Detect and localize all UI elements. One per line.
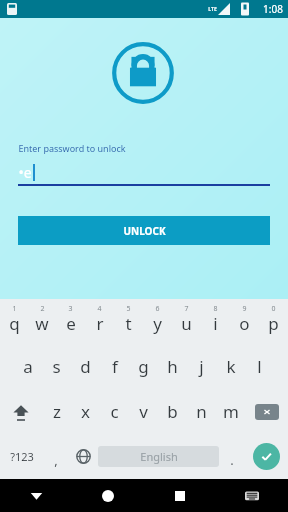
button[interactable]: z (42, 389, 71, 434)
button[interactable]: Backspace (245, 389, 288, 434)
staticText: n (196, 400, 207, 423)
button[interactable]: 7 (172, 299, 201, 344)
button[interactable]: , (43, 434, 69, 479)
button[interactable]: l (245, 344, 274, 389)
button[interactable]: Enter (245, 434, 288, 479)
other: Locked (112, 42, 174, 104)
staticText: 0 (271, 304, 276, 314)
button[interactable]: b (158, 389, 187, 434)
button[interactable]: 8 (201, 299, 230, 344)
button[interactable]: 2 (28, 299, 56, 344)
button[interactable]: c (100, 389, 129, 434)
staticText: w (35, 312, 49, 335)
button[interactable]: h (158, 344, 187, 389)
staticText: 1 (12, 304, 17, 314)
button[interactable]: Recent apps (144, 479, 216, 512)
button[interactable]: v (129, 389, 158, 434)
button[interactable]: Shift (0, 389, 42, 434)
staticText: 2 (40, 304, 45, 314)
staticText: LTE (208, 6, 217, 13)
staticText: UNLOCK (123, 224, 166, 238)
button[interactable]: 3 (56, 299, 85, 344)
staticText: o (239, 312, 250, 335)
staticText: •e (18, 163, 32, 182)
staticText: i (213, 312, 218, 335)
button[interactable]: f (100, 344, 129, 389)
staticText: 5 (126, 304, 131, 314)
staticText: 4 (97, 304, 102, 314)
staticText: . (230, 451, 234, 469)
staticText: j (199, 355, 204, 378)
button[interactable]: Change language (69, 434, 98, 479)
staticText: t (125, 312, 132, 335)
button[interactable]: g (129, 344, 158, 389)
staticText: 1:08 (263, 2, 283, 16)
button[interactable]: UNLOCK (18, 216, 270, 245)
button[interactable]: m (216, 389, 245, 434)
staticText: d (80, 355, 91, 378)
staticText: u (181, 312, 192, 335)
button[interactable]: j (187, 344, 216, 389)
button[interactable]: Back (0, 479, 72, 512)
staticText: y (153, 312, 162, 335)
staticText: c (110, 400, 119, 423)
button[interactable]: 6 (143, 299, 172, 344)
staticText: Enter password to unlock (18, 142, 126, 154)
staticText: 6 (155, 304, 160, 314)
staticText: b (167, 400, 178, 423)
button[interactable]: English (98, 446, 219, 467)
button[interactable]: . (219, 434, 245, 479)
staticText: k (226, 355, 236, 378)
staticText: e (66, 312, 76, 335)
button[interactable]: n (187, 389, 216, 434)
button[interactable]: s (42, 344, 71, 389)
staticText: l (257, 355, 262, 378)
button[interactable]: d (71, 344, 100, 389)
staticText: z (53, 400, 61, 423)
staticText: a (23, 355, 33, 378)
staticText: x (81, 400, 90, 423)
staticText: , (54, 451, 58, 469)
button[interactable]: 9 (230, 299, 259, 344)
button[interactable]: k (216, 344, 245, 389)
button[interactable]: 1 (0, 299, 28, 344)
staticText: h (167, 355, 178, 378)
button[interactable]: x (71, 389, 100, 434)
staticText: v (139, 400, 148, 423)
staticText: English (140, 449, 178, 464)
staticText: f (112, 355, 118, 378)
staticText: 7 (184, 304, 189, 314)
staticText: ?123 (10, 449, 34, 464)
button[interactable]: Home (72, 479, 144, 512)
button[interactable]: ?123 (0, 434, 43, 479)
button[interactable]: 0 (259, 299, 288, 344)
button[interactable]: Hide keyboard (216, 479, 288, 512)
staticText: r (96, 312, 104, 335)
button[interactable]: a (13, 344, 42, 389)
staticText: g (138, 355, 149, 378)
staticText: 3 (68, 304, 73, 314)
staticText: 9 (242, 304, 247, 314)
staticText: q (9, 312, 20, 335)
button[interactable]: 5 (114, 299, 143, 344)
staticText: m (223, 400, 239, 423)
staticText: s (52, 355, 61, 378)
staticText: p (268, 312, 279, 335)
button[interactable]: 4 (85, 299, 114, 344)
staticText: 8 (213, 304, 218, 314)
